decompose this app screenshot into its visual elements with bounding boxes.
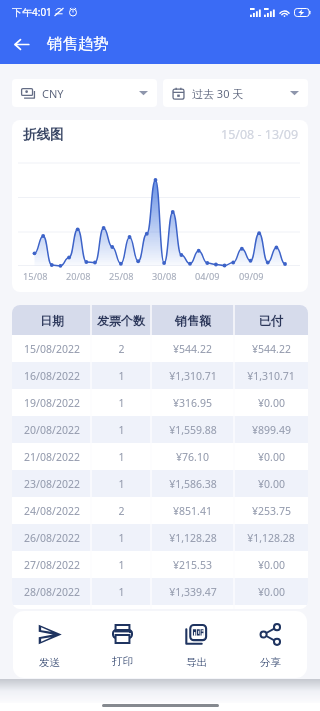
staticText: 1: [118, 531, 125, 545]
staticText: 24/08/2022: [24, 504, 80, 518]
staticText: 导出: [186, 656, 207, 669]
staticText: 折线图: [23, 126, 64, 143]
button[interactable]: 16/08/2022: [12, 362, 308, 389]
button[interactable]: 19/08/2022: [12, 389, 308, 416]
staticText: 过去 30 天: [192, 86, 244, 101]
button[interactable]: 导出: [159, 611, 233, 678]
button[interactable]: 28/08/2022: [12, 578, 308, 605]
button[interactable]: Back: [8, 31, 34, 57]
staticText: ¥253.75: [252, 504, 291, 518]
staticText: 1: [118, 369, 125, 383]
staticText: 下午4:01: [12, 5, 52, 19]
button[interactable]: 过去 30 天: [163, 79, 308, 107]
button[interactable]: 24/08/2022: [12, 497, 308, 524]
button[interactable]: 27/08/2022: [12, 551, 308, 578]
staticText: 发票个数: [97, 313, 145, 328]
staticText: 20/08: [66, 270, 91, 283]
staticText: ¥0.00: [258, 450, 285, 464]
button[interactable]: 23/08/2022: [12, 470, 308, 497]
staticText: CNY: [42, 86, 64, 101]
staticText: 21/08/2022: [24, 450, 80, 464]
staticText: 20/08/2022: [24, 423, 80, 437]
staticText: ¥1,559.88: [169, 423, 217, 437]
staticText: 15/08/2022: [24, 342, 80, 356]
staticText: 1: [118, 585, 125, 599]
staticText: 销售额: [175, 313, 211, 328]
staticText: 日期: [40, 313, 64, 328]
button[interactable]: 20/08/2022: [12, 416, 308, 443]
staticText: ¥0.00: [258, 396, 285, 410]
staticText: ¥544.22: [252, 342, 291, 356]
staticText: 04/09: [195, 270, 220, 283]
staticText: 16/08/2022: [24, 369, 80, 383]
staticText: ¥316.95: [173, 396, 212, 410]
staticText: 15/08 - 13/09: [221, 126, 299, 143]
staticText: 销售趋势: [47, 34, 109, 54]
staticText: 1: [118, 477, 125, 491]
staticText: ¥544.22: [173, 342, 212, 356]
staticText: 1: [118, 423, 125, 437]
staticText: 30/08: [152, 270, 177, 283]
staticText: ¥1,310.71: [169, 369, 217, 383]
button[interactable]: 分享: [233, 611, 307, 678]
staticText: 19/08/2022: [24, 396, 80, 410]
staticText: 15/08: [23, 270, 48, 283]
staticText: 打印: [112, 655, 133, 668]
button[interactable]: 发送: [13, 611, 86, 678]
button[interactable]: CNY: [12, 79, 157, 107]
staticText: ¥1,128.28: [247, 531, 295, 545]
staticText: ¥1,310.71: [247, 369, 295, 383]
button[interactable]: 15/08/2022: [12, 335, 308, 362]
staticText: ¥76.10: [176, 450, 209, 464]
staticText: 1: [118, 396, 125, 410]
staticText: ¥1,586.38: [169, 477, 217, 491]
staticText: 发送: [39, 656, 60, 669]
staticText: ¥0.00: [258, 585, 285, 599]
staticText: ¥899.49: [252, 423, 291, 437]
staticText: ¥851.41: [173, 504, 212, 518]
staticText: ¥1,339.47: [169, 585, 217, 599]
button[interactable]: 21/08/2022: [12, 443, 308, 470]
staticText: 09/09: [239, 270, 264, 283]
staticText: 23/08/2022: [24, 477, 80, 491]
staticText: 1: [118, 450, 125, 464]
staticText: 已付: [259, 313, 283, 328]
staticText: 2: [118, 342, 125, 356]
staticText: 25/08: [109, 270, 134, 283]
button[interactable]: 26/08/2022: [12, 524, 308, 551]
staticText: 26/08/2022: [24, 531, 80, 545]
staticText: ¥215.53: [173, 558, 212, 572]
button[interactable]: 打印: [86, 611, 159, 678]
staticText: 分享: [260, 656, 281, 669]
staticText: ¥1,128.28: [169, 531, 217, 545]
staticText: 2: [118, 504, 125, 518]
staticText: ¥0.00: [258, 558, 285, 572]
staticText: 27/08/2022: [24, 558, 80, 572]
staticText: ¥0.00: [258, 477, 285, 491]
staticText: 1: [118, 558, 125, 572]
staticText: 28/08/2022: [24, 585, 80, 599]
